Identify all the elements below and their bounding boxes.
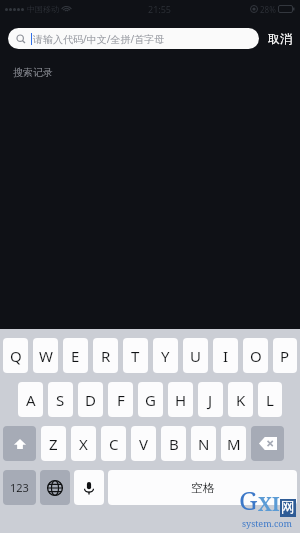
- staticText: 网: [281, 499, 295, 517]
- button[interactable]: C: [101, 426, 126, 461]
- staticText: A: [26, 390, 36, 410]
- button[interactable]: Shift: [3, 426, 36, 461]
- button[interactable]: H: [168, 382, 193, 417]
- staticText: 取消: [268, 31, 292, 46]
- button[interactable]: Voice input: [74, 470, 104, 505]
- staticText: W: [39, 346, 53, 366]
- button[interactable]: K: [228, 382, 253, 417]
- button[interactable]: L: [258, 382, 282, 417]
- staticText: G: [145, 390, 156, 410]
- button[interactable]: T: [123, 338, 148, 373]
- staticText: Y: [161, 346, 170, 366]
- button[interactable]: M: [221, 426, 246, 461]
- button[interactable]: W: [33, 338, 58, 373]
- staticText: V: [139, 434, 149, 454]
- staticText: B: [169, 434, 179, 454]
- staticText: system.com: [242, 517, 293, 529]
- button[interactable]: U: [183, 338, 208, 373]
- button[interactable]: Q: [3, 338, 28, 373]
- staticText: S: [56, 390, 65, 410]
- staticText: P: [280, 346, 290, 366]
- button[interactable]: J: [198, 382, 223, 417]
- staticText: 搜索记录: [13, 66, 53, 79]
- staticText: XI: [258, 491, 280, 517]
- button[interactable]: R: [93, 338, 118, 373]
- button[interactable]: D: [78, 382, 103, 417]
- button[interactable]: Backspace: [251, 426, 284, 461]
- button[interactable]: O: [243, 338, 268, 373]
- staticText: K: [236, 390, 246, 410]
- staticText: D: [85, 390, 96, 410]
- staticText: 21:55: [148, 3, 172, 15]
- button[interactable]: G: [138, 382, 163, 417]
- button[interactable]: Change keyboard: [40, 470, 70, 505]
- button[interactable]: 123: [3, 470, 36, 505]
- staticText: X: [79, 434, 88, 454]
- staticText: M: [227, 434, 241, 454]
- button[interactable]: B: [161, 426, 186, 461]
- staticText: 28%: [260, 4, 276, 15]
- button[interactable]: 空格: [108, 470, 297, 505]
- button[interactable]: X: [71, 426, 96, 461]
- button[interactable]: I: [213, 338, 238, 373]
- staticText: N: [198, 434, 210, 454]
- button[interactable]: Z: [41, 426, 66, 461]
- button[interactable]: F: [108, 382, 133, 417]
- staticText: 中国移动: [27, 4, 59, 14]
- staticText: G: [239, 482, 258, 517]
- button[interactable]: P: [273, 338, 297, 373]
- staticText: 123: [10, 480, 29, 495]
- staticText: E: [71, 346, 80, 366]
- staticText: R: [101, 346, 111, 366]
- button[interactable]: 请输入代码/中文/全拼/首字母: [8, 28, 259, 49]
- button[interactable]: V: [131, 426, 156, 461]
- button[interactable]: A: [18, 382, 43, 417]
- button[interactable]: S: [48, 382, 73, 417]
- staticText: Z: [49, 434, 58, 454]
- staticText: 空格: [191, 480, 215, 495]
- staticText: I: [223, 346, 229, 366]
- staticText: U: [190, 346, 201, 366]
- button[interactable]: Y: [153, 338, 178, 373]
- staticText: H: [175, 390, 187, 410]
- staticText: J: [208, 390, 213, 410]
- staticText: 请输入代码/中文/全拼/首字母: [33, 32, 165, 46]
- button[interactable]: N: [191, 426, 216, 461]
- button[interactable]: 取消: [268, 31, 292, 46]
- staticText: C: [109, 434, 119, 454]
- staticText: F: [117, 390, 125, 410]
- staticText: L: [266, 390, 274, 410]
- staticText: Q: [10, 346, 22, 366]
- staticText: T: [131, 346, 140, 366]
- staticText: O: [250, 346, 262, 366]
- button[interactable]: E: [63, 338, 88, 373]
